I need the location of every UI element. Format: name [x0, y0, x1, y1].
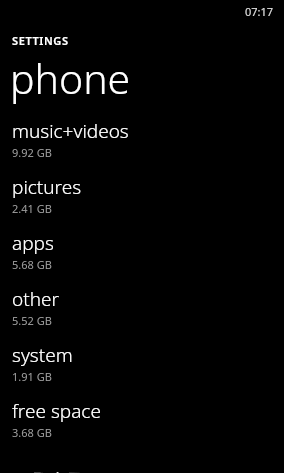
staticText: 2.41 GB: [12, 201, 52, 216]
button[interactable]: free space 3.68 GB: [0, 398, 284, 440]
staticText: 5.52 GB: [12, 313, 52, 328]
staticText: 双电网（www. pcpc. me）: [33, 468, 251, 473]
staticText: system: [12, 342, 73, 368]
staticText: music+videos: [12, 118, 129, 144]
staticText: other: [12, 286, 59, 312]
staticText: 5.68 GB: [12, 257, 52, 272]
staticText: 07:17: [245, 4, 274, 19]
staticText: 3.68 GB: [12, 425, 52, 440]
staticText: apps: [12, 230, 54, 256]
staticText: phone: [10, 50, 131, 106]
button[interactable]: music+videos 9.92 GB: [0, 118, 284, 160]
staticText: 9.92 GB: [12, 145, 52, 160]
staticText: pictures: [12, 174, 82, 200]
button[interactable]: other 5.52 GB: [0, 286, 284, 328]
button[interactable]: apps 5.68 GB: [0, 230, 284, 272]
staticText: 1.91 GB: [12, 369, 52, 384]
staticText: SETTINGS: [12, 33, 69, 48]
button[interactable]: system 1.91 GB: [0, 342, 284, 384]
staticText: free space: [12, 398, 101, 424]
button[interactable]: pictures 2.41 GB: [0, 174, 284, 216]
